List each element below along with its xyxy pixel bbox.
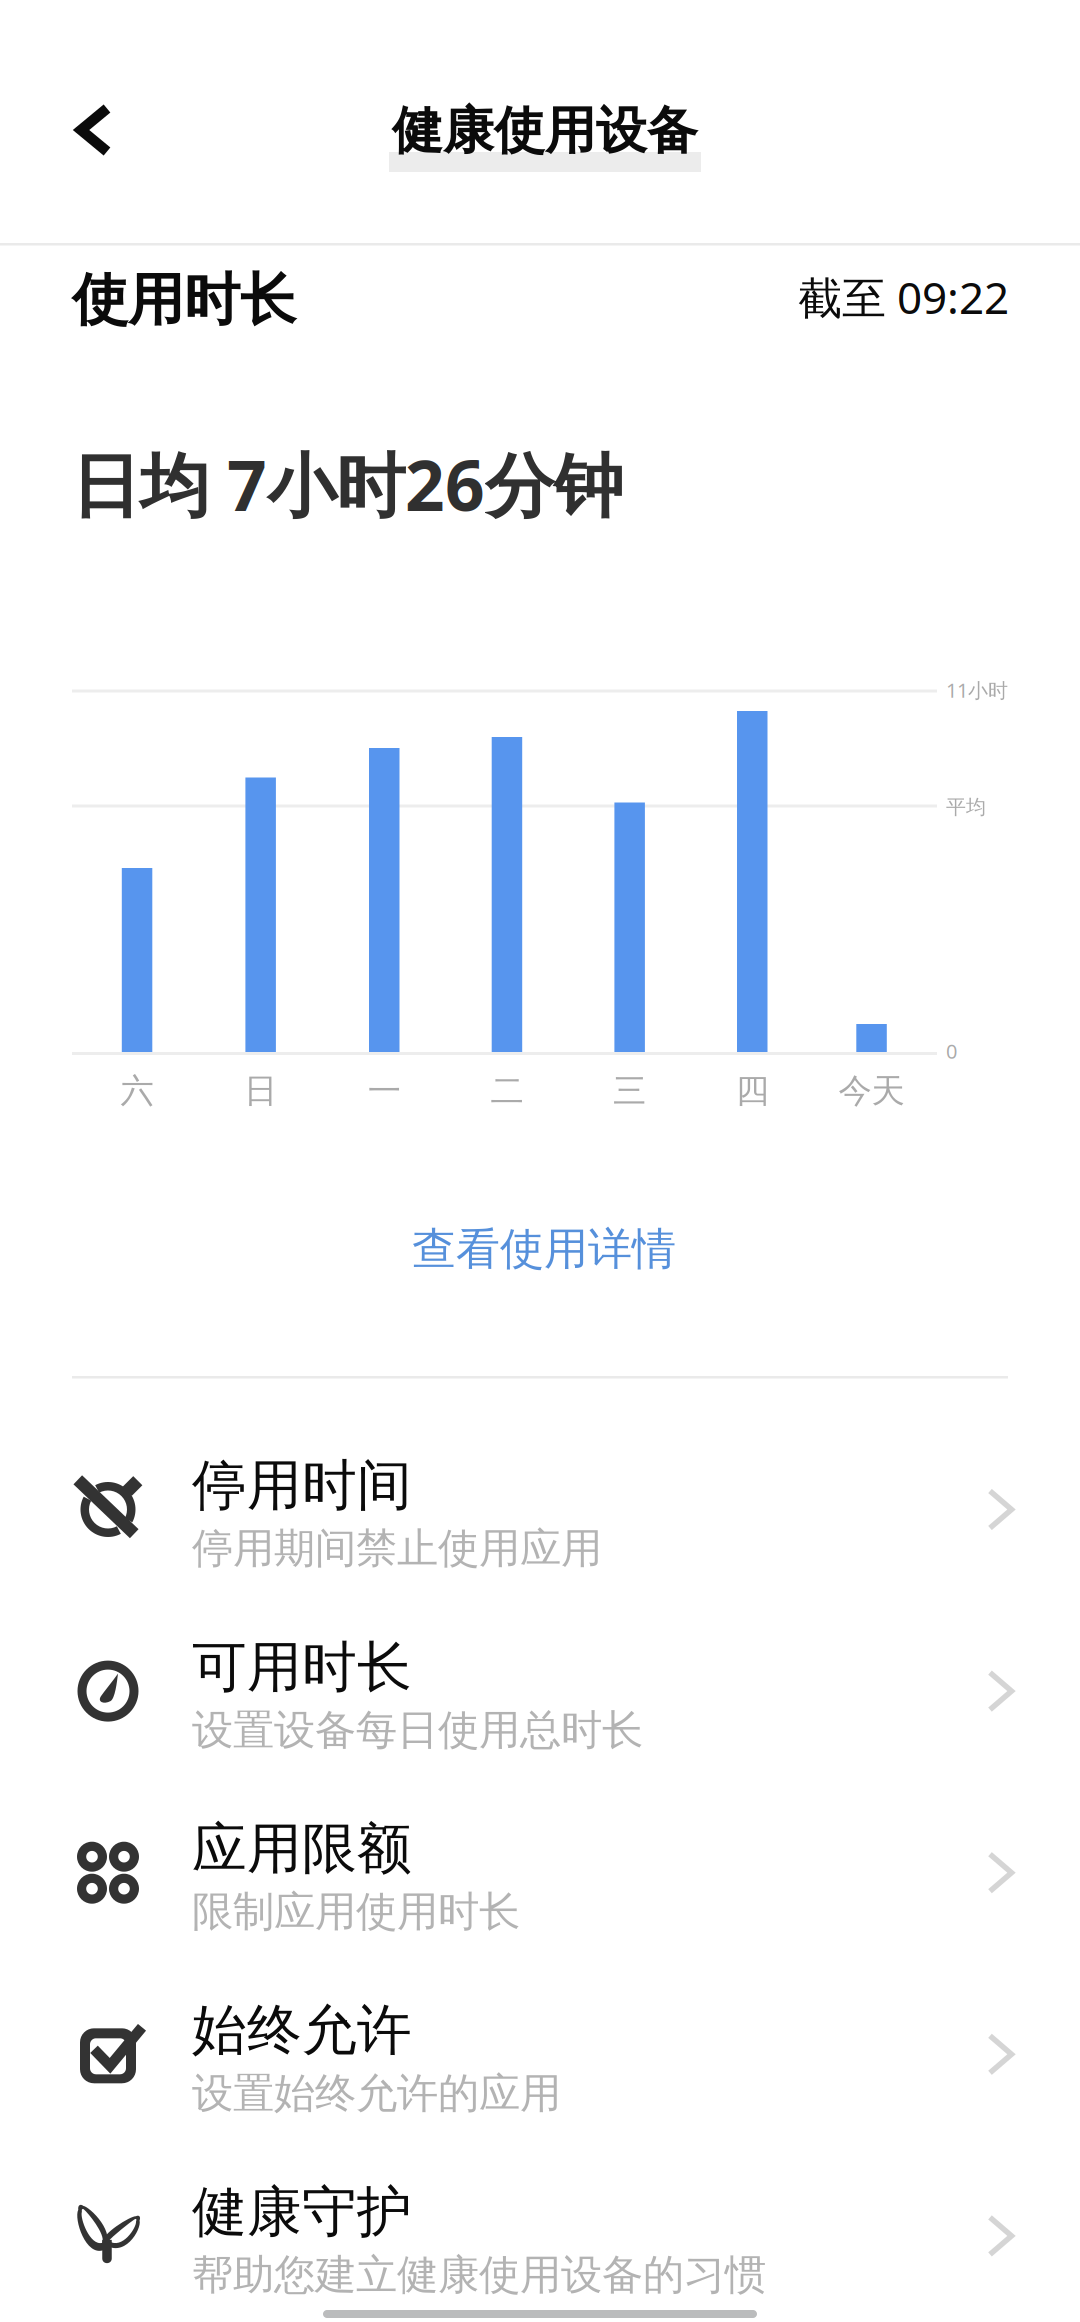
button[interactable]: 停用时间 xyxy=(0,1419,1080,1600)
staticText: 截至 09:22 xyxy=(798,268,1009,326)
staticText: 一 xyxy=(368,1070,401,1111)
staticText: 查看使用详情 xyxy=(412,1222,676,1276)
button[interactable]: 健康守护 xyxy=(0,2145,1080,2322)
button[interactable]: 查看使用详情 xyxy=(334,1193,754,1305)
staticText: 始终允许 xyxy=(192,1997,412,2064)
staticText: 设置设备每日使用总时长 xyxy=(192,1705,643,1756)
staticText: 设置始终允许的应用 xyxy=(192,2068,561,2119)
staticText: 停用期间禁止使用应用 xyxy=(192,1523,602,1574)
staticText: 应用限额 xyxy=(192,1815,412,1882)
staticText: 三 xyxy=(613,1070,646,1111)
staticText: 使用时长 xyxy=(72,266,296,334)
staticText: 六 xyxy=(120,1070,153,1111)
staticText: 日 xyxy=(244,1070,277,1111)
staticText: 今天 xyxy=(838,1070,904,1111)
staticText: 日均 7小时26分钟 xyxy=(71,438,623,530)
button[interactable]: 可用时长 xyxy=(0,1600,1080,1782)
staticText: 帮助您建立健康使用设备的习惯 xyxy=(192,2250,766,2300)
button[interactable]: 应用限额 xyxy=(0,1782,1080,1963)
staticText: 四 xyxy=(736,1070,769,1111)
staticText: 健康使用设备 xyxy=(392,100,698,162)
staticText: 二 xyxy=(490,1070,523,1111)
staticText: 健康守护 xyxy=(192,2178,412,2245)
staticText: 平均 xyxy=(946,795,986,819)
staticText: 可用时长 xyxy=(192,1634,412,1701)
staticText: 限制应用使用时长 xyxy=(192,1886,520,1937)
staticText: 0 xyxy=(946,1038,957,1064)
staticText: 11小时 xyxy=(946,677,1008,703)
button[interactable]: 返回 xyxy=(0,0,1080,2322)
staticText: 停用时间 xyxy=(192,1452,412,1519)
button[interactable]: 始终允许 xyxy=(0,1963,1080,2145)
